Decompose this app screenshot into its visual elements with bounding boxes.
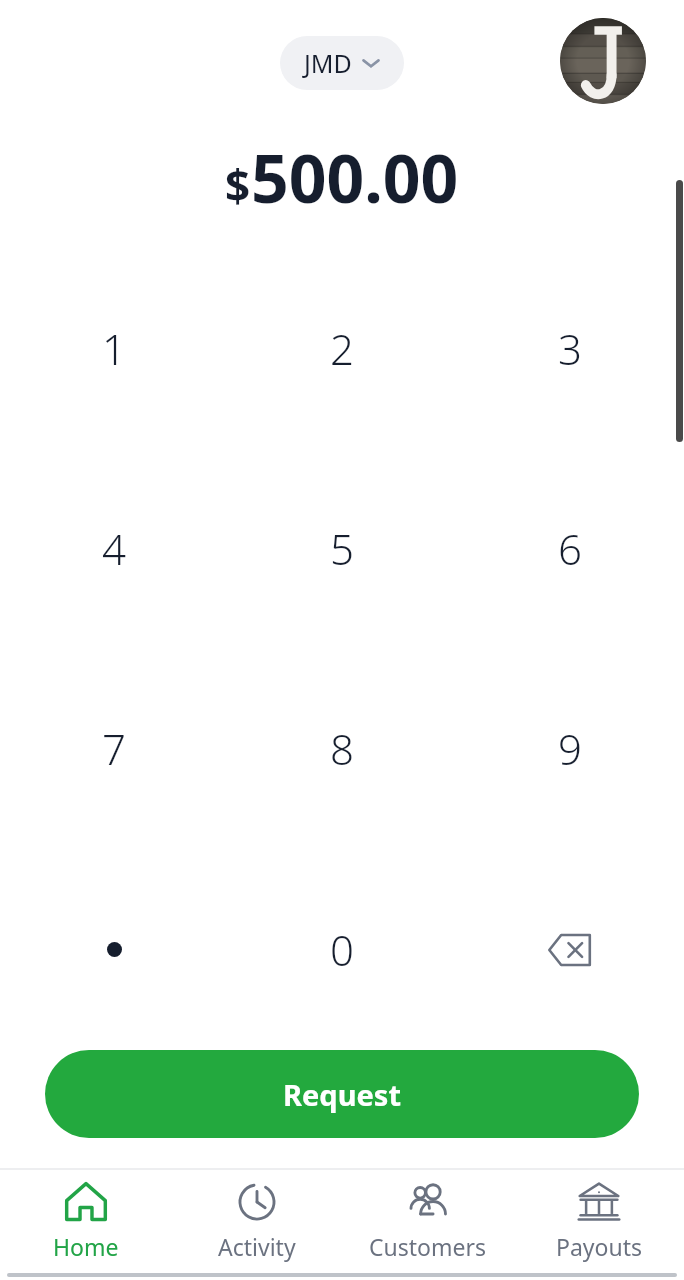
button[interactable]: 2 [228, 248, 456, 448]
staticText: 8 [330, 720, 354, 777]
staticText: Home [53, 1231, 119, 1262]
button[interactable]: 0 [228, 849, 456, 1050]
button[interactable]: 6 [456, 448, 684, 648]
button[interactable]: Payouts [513, 1170, 684, 1270]
staticText: JMD [304, 46, 352, 80]
button[interactable]: Home [0, 1170, 171, 1270]
button[interactable]: 5 [228, 448, 456, 648]
button[interactable]: JMD [280, 36, 404, 90]
staticText: 5 [330, 520, 354, 577]
staticText: Payouts [556, 1231, 642, 1262]
button[interactable]: Customers [342, 1170, 513, 1270]
staticText: Request [283, 1075, 401, 1114]
staticText: 1 [102, 320, 126, 377]
button[interactable]: 3 [456, 248, 684, 448]
staticText: 0 [330, 921, 354, 978]
staticText: 2 [330, 320, 354, 377]
button[interactable]: 9 [456, 648, 684, 849]
button[interactable]: 4 [0, 448, 228, 648]
staticText: 7 [102, 720, 126, 777]
button[interactable]: Request [45, 1050, 639, 1138]
button[interactable]: Backspace [456, 849, 684, 1050]
button[interactable]: Activity [171, 1170, 342, 1270]
staticText: 6 [558, 520, 582, 577]
button[interactable]: 1 [0, 248, 228, 448]
staticText: $ [225, 155, 251, 215]
staticText: Activity [218, 1231, 296, 1262]
staticText: 9 [558, 720, 582, 777]
staticText: 500.00 [251, 132, 459, 222]
staticText: Customers [369, 1231, 486, 1262]
button[interactable]: 7 [0, 648, 228, 849]
button[interactable]: 8 [228, 648, 456, 849]
button[interactable]: Profile [560, 18, 646, 104]
staticText: 4 [102, 520, 126, 577]
staticText: 3 [558, 320, 582, 377]
button[interactable] [0, 849, 228, 1050]
